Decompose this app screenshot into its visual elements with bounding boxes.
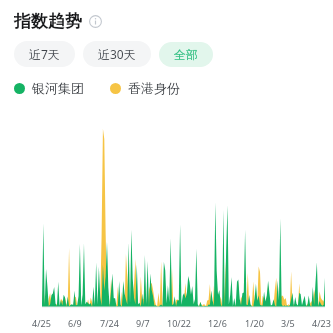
staticText: 4/25 (32, 317, 51, 329)
staticText: 10/22 (167, 317, 191, 329)
staticText: 7/24 (100, 317, 119, 329)
button[interactable]: 近7天 (14, 41, 75, 67)
staticText: 近30天 (98, 46, 136, 62)
staticText: 香港身份 (128, 80, 180, 96)
staticText: 1/20 (245, 317, 264, 329)
staticText: 12/6 (208, 317, 227, 329)
button[interactable]: 近30天 (83, 41, 151, 67)
staticText: 6/9 (68, 317, 82, 329)
staticText: 全部 (174, 47, 198, 62)
staticText: 近7天 (29, 46, 60, 62)
staticText: 银河集团 (32, 80, 84, 96)
button[interactable]: 说明 (89, 15, 102, 28)
button[interactable]: 银河集团 (14, 80, 84, 96)
staticText: 4/23 (312, 317, 331, 329)
button[interactable]: 全部 (159, 42, 213, 67)
staticText: 9/7 (136, 317, 150, 329)
staticText: 3/5 (281, 317, 295, 329)
button[interactable]: 香港身份 (110, 80, 180, 96)
staticText: 指数趋势 (14, 11, 82, 32)
